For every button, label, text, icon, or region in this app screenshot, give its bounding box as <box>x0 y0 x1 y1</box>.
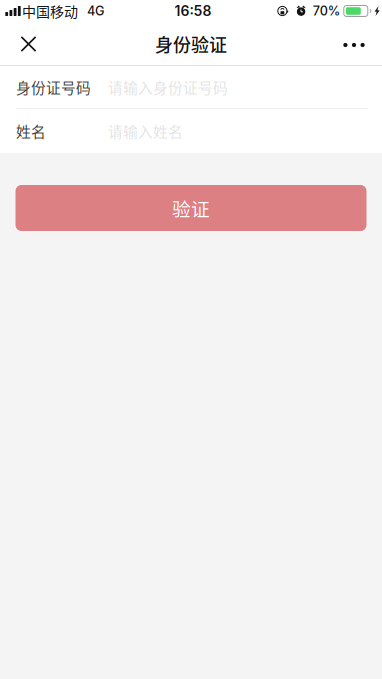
staticText: 中国移动 <box>22 1 78 21</box>
button[interactable]: 身份证号码 <box>0 66 382 108</box>
staticText: 16:58 <box>174 2 211 19</box>
staticText: 身份验证 <box>155 31 227 57</box>
button[interactable]: 姓名 <box>0 109 382 153</box>
button[interactable]: 验证 <box>15 185 366 231</box>
staticText: 身份证号码 <box>16 76 91 98</box>
staticText: 请输入姓名 <box>108 120 183 142</box>
staticText: 4G <box>87 3 104 19</box>
button[interactable]: Close <box>6 24 51 64</box>
button[interactable]: More <box>332 24 376 64</box>
staticText: 验证 <box>172 194 210 221</box>
staticText: 请输入身份证号码 <box>108 76 228 98</box>
staticText: 姓名 <box>16 120 46 142</box>
staticText: 70% <box>313 3 341 19</box>
